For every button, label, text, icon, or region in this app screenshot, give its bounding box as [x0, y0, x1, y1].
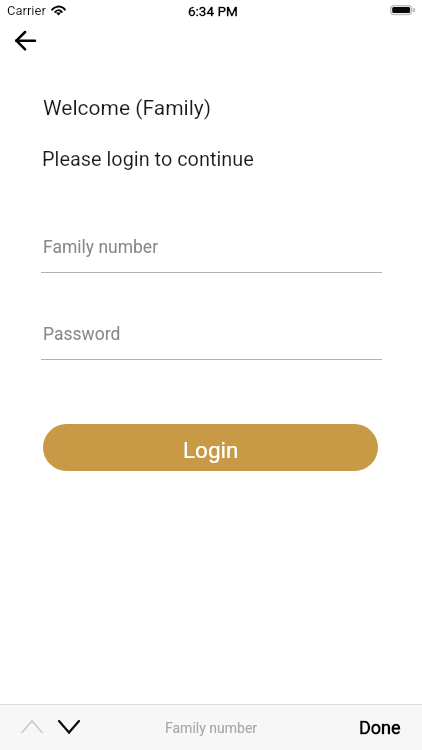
staticText: Login [183, 437, 239, 463]
button[interactable]: Back [4, 24, 46, 58]
staticText: Please login to continue [42, 148, 254, 171]
button[interactable]: Password [41, 324, 382, 360]
staticText: Welcome (Family) [43, 96, 212, 121]
staticText: Family number [165, 720, 258, 736]
button[interactable]: Previous field [15, 705, 49, 750]
staticText: Password [43, 324, 121, 345]
staticText: Done [359, 717, 401, 738]
staticText: 6:34 PM [188, 3, 238, 19]
button[interactable]: Login [43, 424, 378, 471]
button[interactable]: Family number [41, 237, 382, 273]
button[interactable]: Done [359, 705, 401, 750]
staticText: Family number [43, 237, 159, 258]
button[interactable]: Next field [52, 705, 86, 750]
staticText: Carrier [7, 3, 46, 18]
